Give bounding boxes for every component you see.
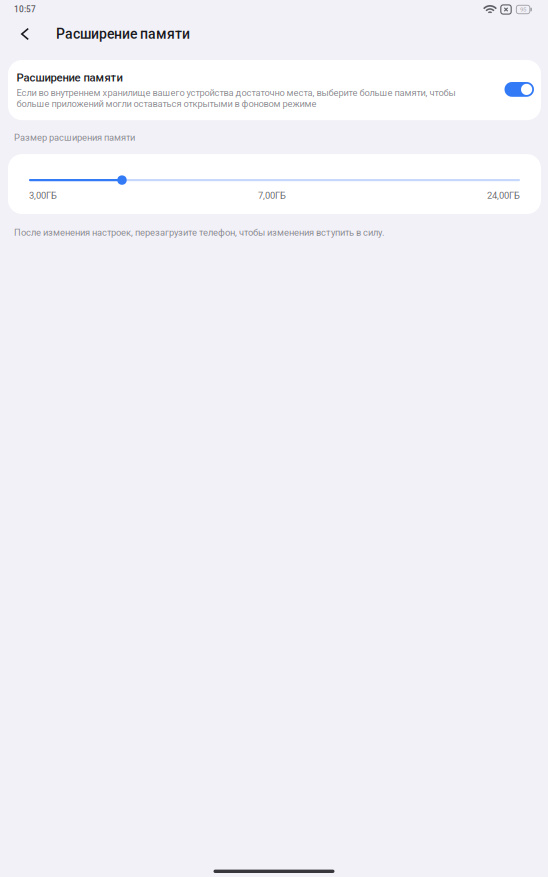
staticText: 24,00ГБ: [487, 190, 520, 201]
staticText: Расширение памяти: [16, 71, 122, 84]
staticText: 3,00ГБ: [29, 190, 57, 201]
button[interactable]: Расширение памяти: [504, 71, 534, 97]
staticText: Размер расширения памяти: [14, 132, 135, 143]
staticText: Если во внутреннем хранилище вашего устр…: [16, 87, 455, 109]
staticText: 10:57: [14, 5, 36, 14]
button[interactable]: Назад: [10, 19, 40, 49]
staticText: Расширение памяти: [56, 26, 190, 42]
staticText: 7,00ГБ: [258, 190, 286, 201]
staticText: После изменения настроек, перезагрузите …: [14, 227, 384, 238]
staticText: 95: [520, 6, 526, 13]
